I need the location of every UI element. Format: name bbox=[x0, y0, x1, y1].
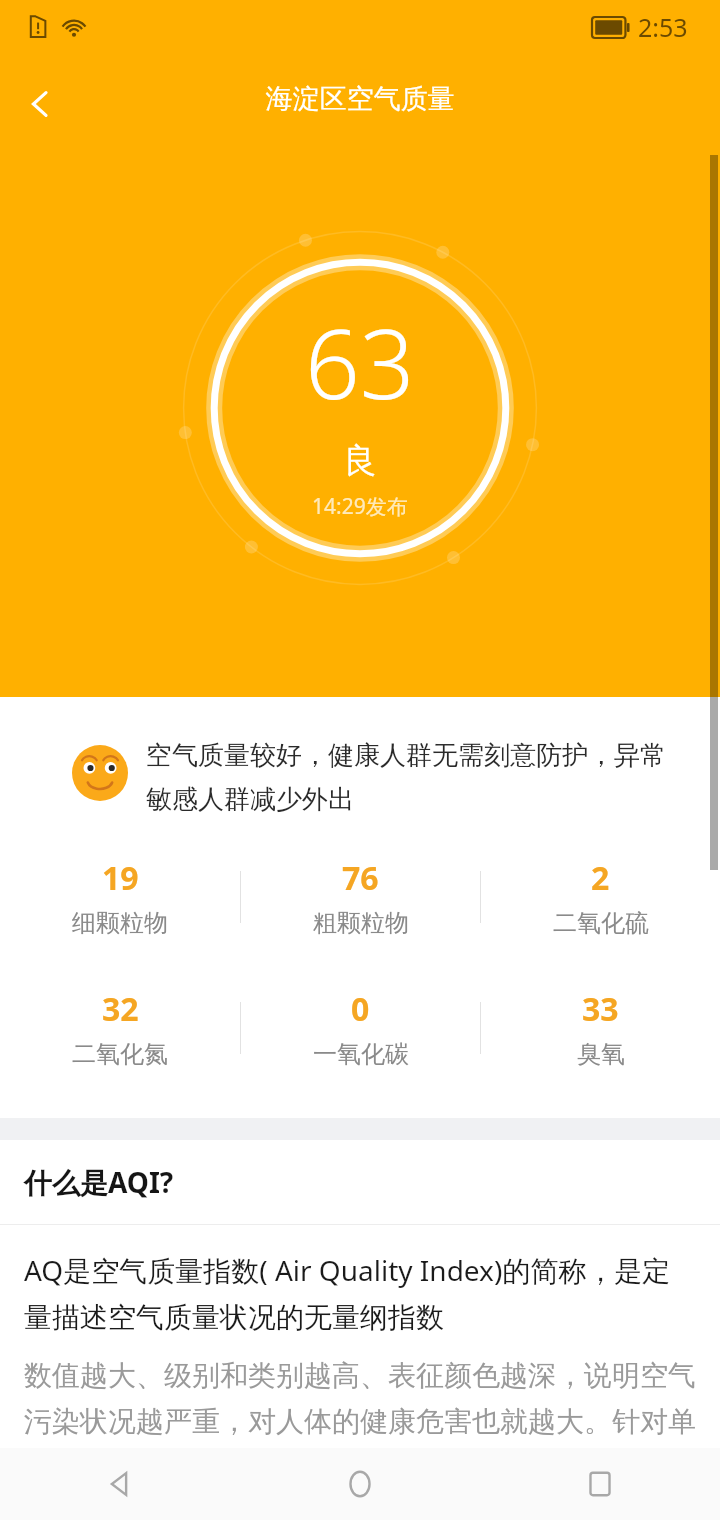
button[interactable]: Home bbox=[240, 1448, 480, 1520]
button[interactable]: 76 bbox=[241, 844, 480, 949]
staticText: 2 bbox=[591, 856, 610, 900]
staticText: 海淀区空气质量 bbox=[0, 82, 720, 116]
staticText: 细颗粒物 bbox=[72, 908, 168, 938]
button[interactable]: 2 bbox=[481, 844, 720, 949]
staticText: 什么是AQI? bbox=[24, 1163, 174, 1201]
staticText: 14:29发布 bbox=[312, 492, 408, 521]
button[interactable]: 什么是AQI? bbox=[0, 1140, 720, 1224]
staticText: 76 bbox=[342, 856, 379, 900]
staticText: 19 bbox=[102, 856, 139, 900]
staticText: 二氧化氮 bbox=[72, 1039, 168, 1069]
staticText: 空气质量较好，健康人群无需刻意防护，异常敏感人群减少外出 bbox=[146, 739, 680, 816]
staticText: 32 bbox=[102, 987, 139, 1031]
staticText: 33 bbox=[582, 987, 619, 1031]
staticText: 2:53 bbox=[638, 10, 688, 44]
button[interactable]: 32 bbox=[0, 975, 240, 1080]
button[interactable]: Back bbox=[8, 72, 72, 136]
staticText: 粗颗粒物 bbox=[313, 908, 409, 938]
staticText: 0 bbox=[351, 987, 370, 1031]
staticText: 数值越大、级别和类别越高、表征颜色越深，说明空气污染状况越严重，对人体的健康危害… bbox=[24, 1358, 696, 1486]
button[interactable]: Back bbox=[0, 1448, 240, 1520]
staticText: 63 bbox=[305, 296, 415, 427]
button[interactable]: Recents bbox=[480, 1448, 720, 1520]
button[interactable]: 33 bbox=[481, 975, 720, 1080]
staticText: 二氧化硫 bbox=[553, 908, 649, 938]
button[interactable]: 19 bbox=[0, 844, 240, 949]
staticText: 臭氧 bbox=[577, 1039, 625, 1069]
button[interactable]: 0 bbox=[241, 975, 480, 1080]
staticText: 一氧化碳 bbox=[313, 1039, 409, 1069]
staticText: 良 bbox=[343, 439, 377, 482]
staticText: AQ是空气质量指数( Air Quality Index)的简称，是定量描述空气… bbox=[24, 1251, 696, 1336]
